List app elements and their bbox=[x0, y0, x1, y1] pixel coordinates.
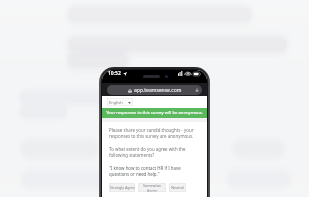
button[interactable]: Address bar bbox=[107, 85, 202, 95]
staticText: Somewhat Agree bbox=[138, 183, 166, 192]
staticText: Neutral bbox=[171, 185, 184, 190]
staticText: Your responses to this survey will be an… bbox=[106, 110, 203, 116]
staticText: English bbox=[109, 100, 123, 105]
button[interactable]: Somewhat Agree bbox=[138, 183, 166, 192]
staticText: "I know how to contact HR if I have ques… bbox=[109, 165, 200, 178]
staticText: Strongly Agree bbox=[110, 185, 135, 190]
button[interactable]: Neutral bbox=[169, 183, 186, 192]
staticText: Please share your candid thoughts - your… bbox=[109, 127, 200, 140]
staticText: To what extent do you agree with the fol… bbox=[109, 146, 200, 159]
staticText: 10:52 bbox=[108, 70, 121, 77]
button[interactable]: Strongly Agree bbox=[109, 183, 135, 192]
staticText: app.teamsense.com bbox=[134, 87, 182, 94]
button[interactable]: English bbox=[107, 98, 133, 106]
